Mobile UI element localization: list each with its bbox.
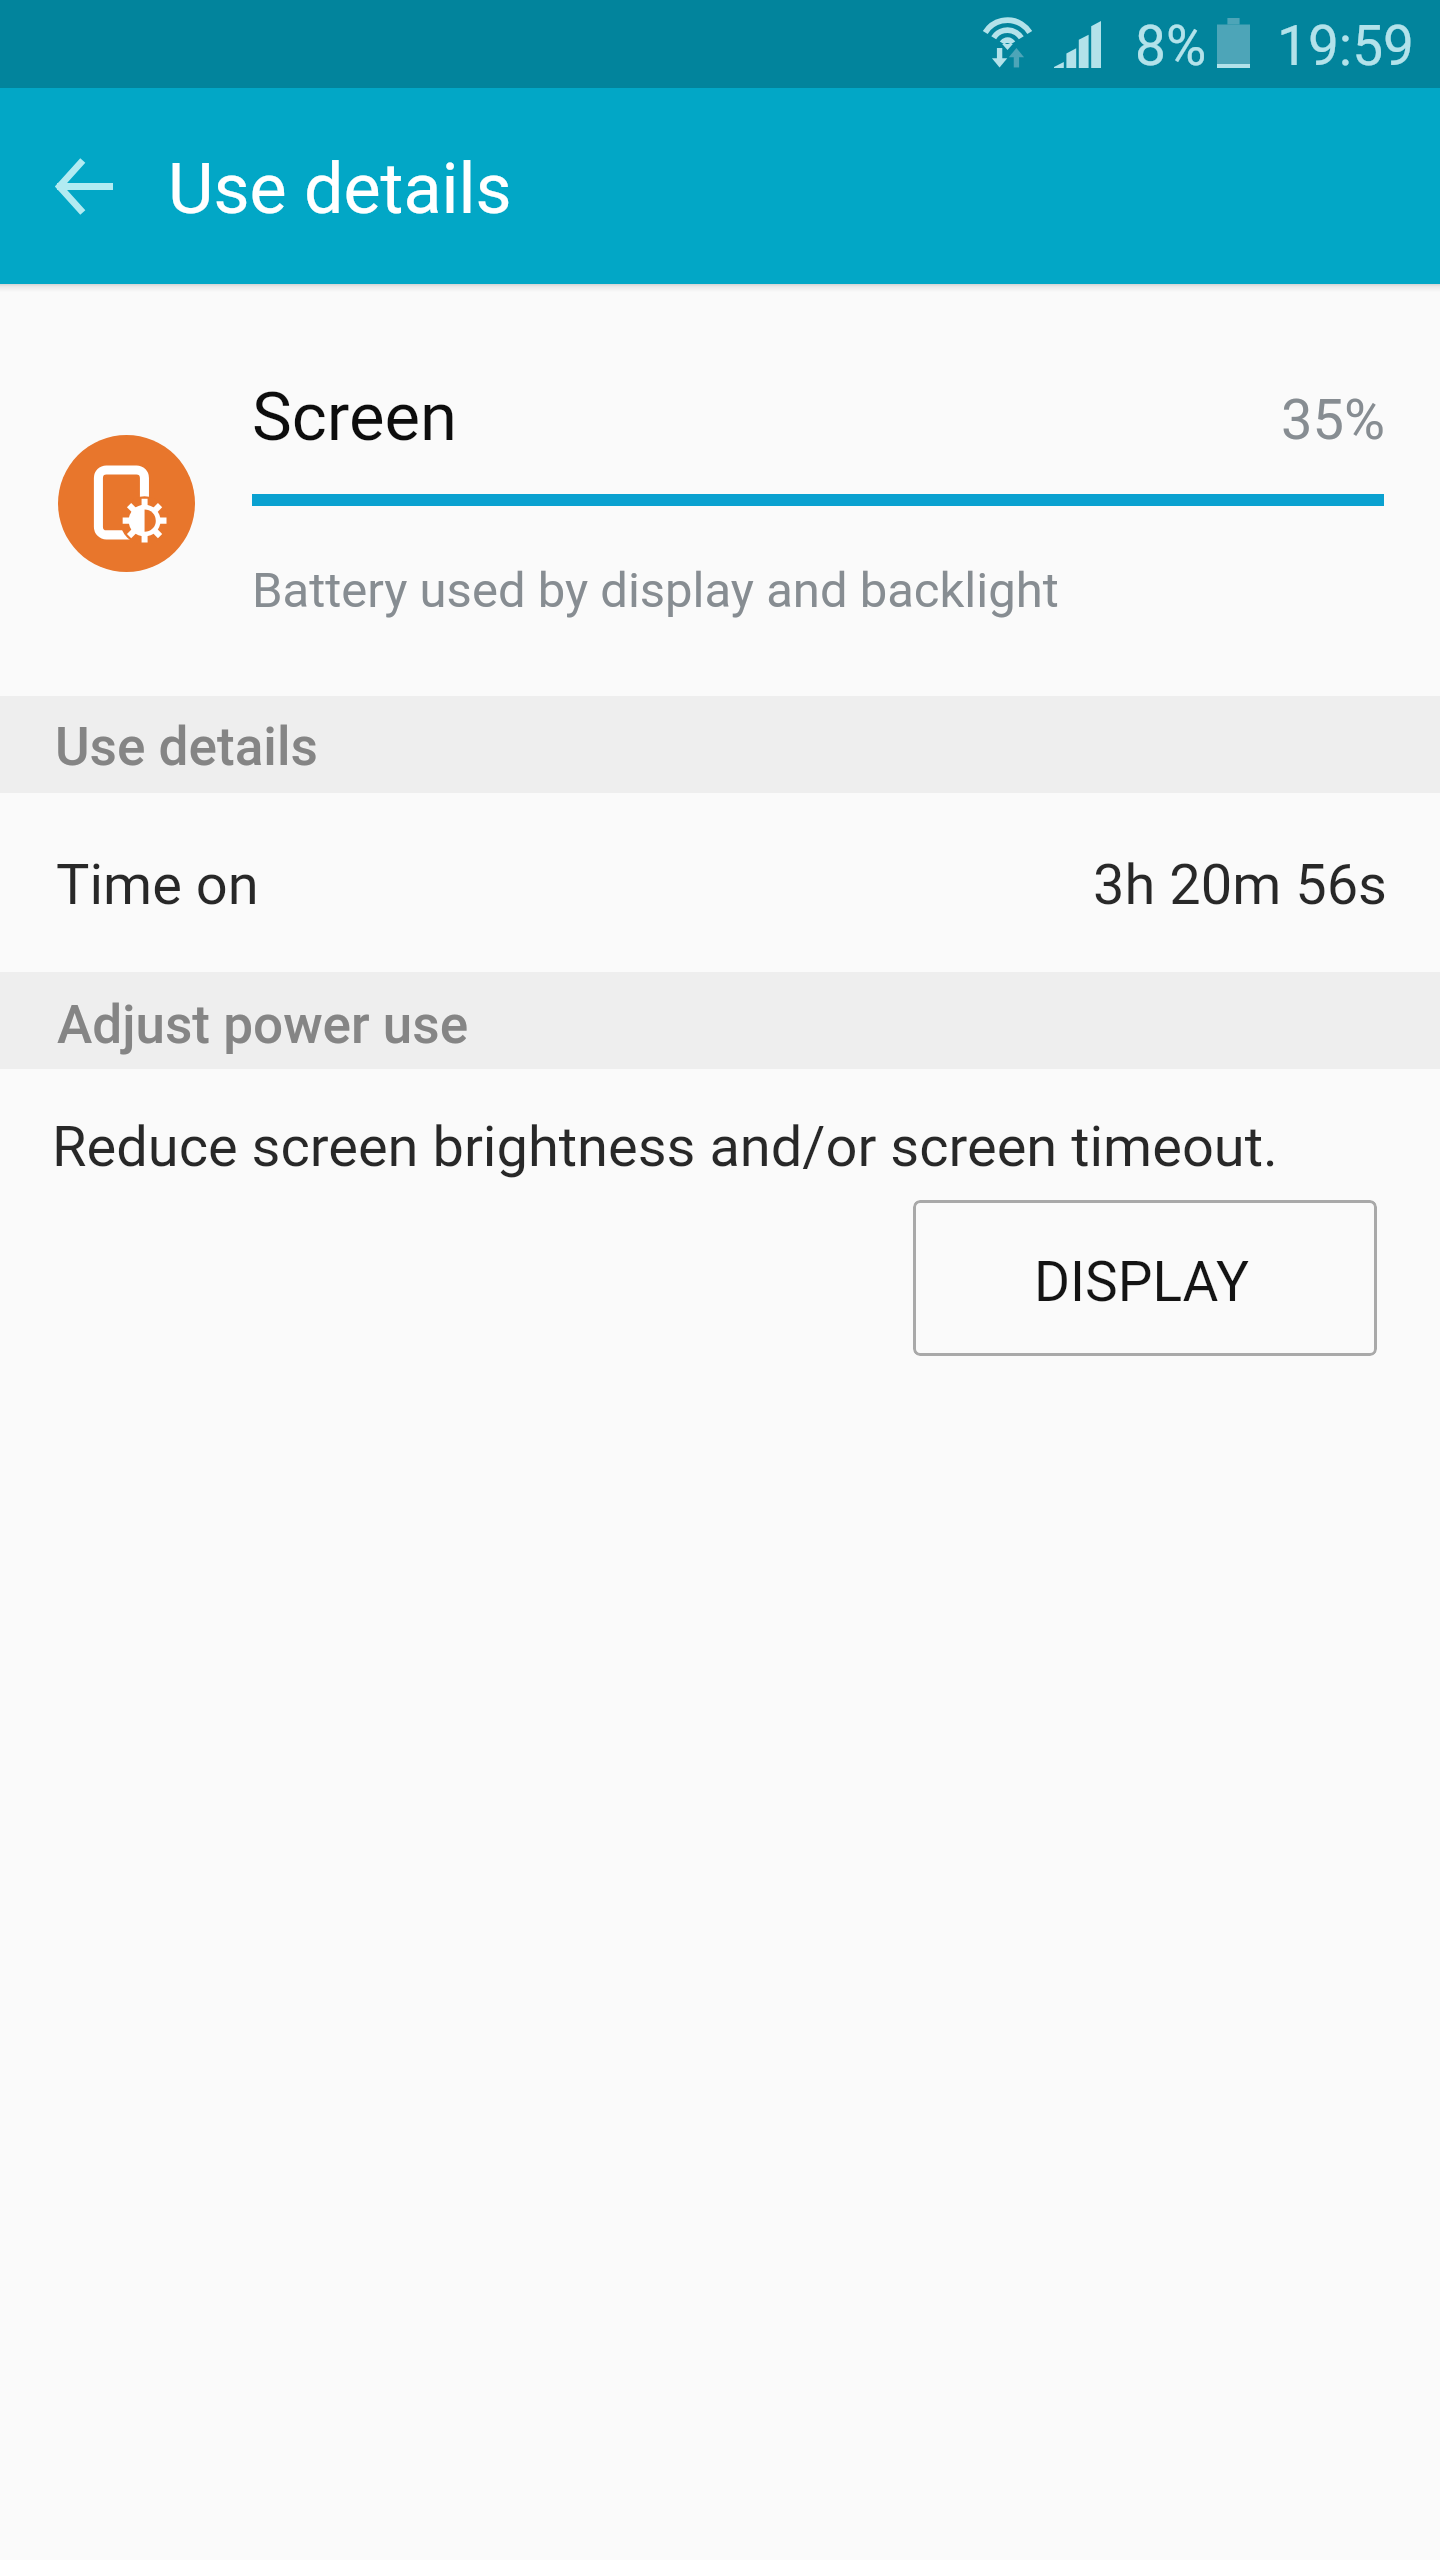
staticText: Use details bbox=[168, 148, 512, 230]
staticText: Screen bbox=[252, 378, 457, 457]
staticText: 35% bbox=[1281, 387, 1385, 453]
button[interactable]: Screen bbox=[0, 292, 1440, 696]
button[interactable]: DISPLAY bbox=[913, 1200, 1377, 1356]
staticText: 8% bbox=[1135, 14, 1207, 78]
staticText: 3h 20m 56s bbox=[1093, 852, 1387, 918]
staticText: Reduce screen brightness and/or screen t… bbox=[52, 1114, 1278, 1180]
staticText: Time on bbox=[56, 852, 259, 918]
button[interactable]: Navigate up bbox=[17, 88, 151, 284]
button[interactable]: Time on bbox=[0, 795, 1440, 974]
staticText: 19:59 bbox=[1277, 14, 1414, 78]
staticText: DISPLAY bbox=[1034, 1250, 1249, 1314]
staticText: Adjust power use bbox=[57, 994, 469, 1056]
staticText: Use details bbox=[55, 716, 318, 778]
staticText: Battery used by display and backlight bbox=[252, 562, 1059, 619]
